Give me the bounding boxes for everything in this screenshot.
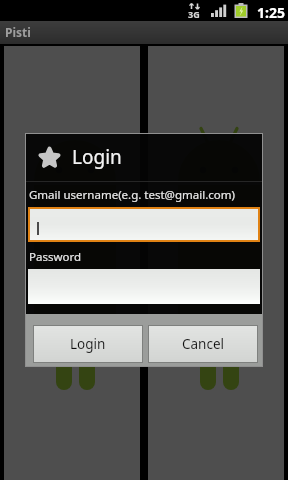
- staticText: Cancel: [182, 335, 225, 353]
- button[interactable]: [30, 209, 258, 240]
- button[interactable]: Login: [33, 325, 143, 363]
- staticText: Login: [70, 335, 106, 353]
- button[interactable]: [28, 269, 260, 304]
- staticText: Login: [72, 144, 122, 170]
- button[interactable]: Cancel: [148, 325, 258, 363]
- staticText: 3G: [188, 8, 200, 20]
- staticText: Pisti: [5, 24, 31, 40]
- staticText: Password: [29, 249, 82, 265]
- staticText: 1:25: [257, 3, 285, 22]
- staticText: Gmail username(e.g. test@gmail.com): [29, 187, 235, 203]
